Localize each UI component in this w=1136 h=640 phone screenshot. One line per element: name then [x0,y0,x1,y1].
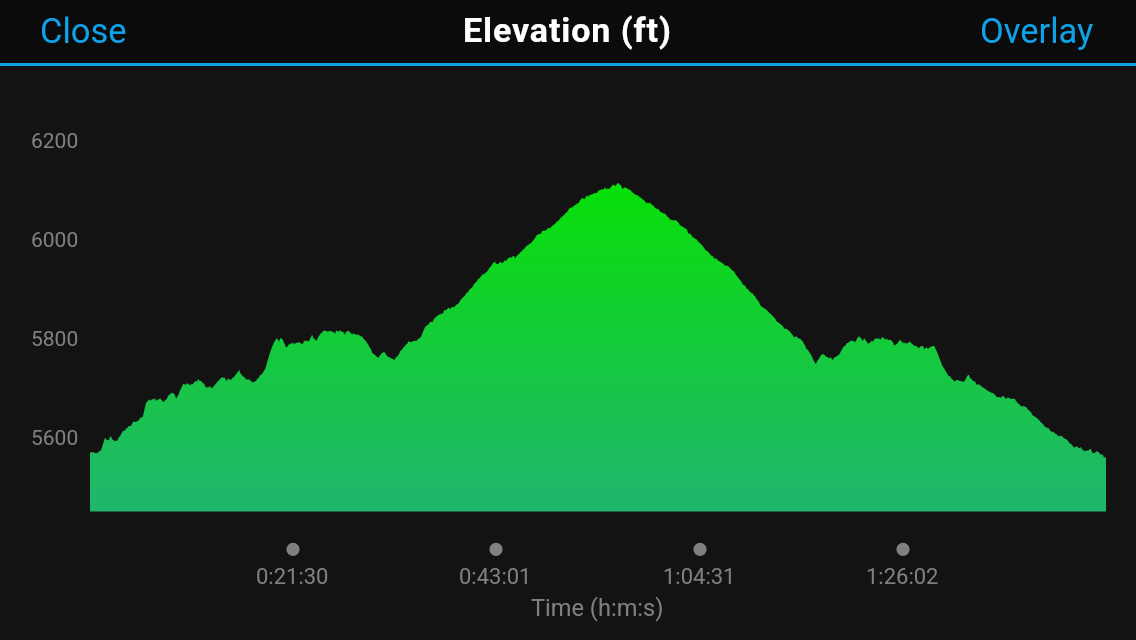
staticText: 1:26:02 [866,564,939,590]
staticText: 6000 [31,228,79,253]
staticText: 1:04:31 [663,564,736,590]
button[interactable]: Close [18,0,149,63]
staticText: 6200 [31,129,79,154]
staticText: 5600 [31,426,79,451]
staticText: 5800 [31,327,79,352]
staticText: 0:43:01 [459,564,532,590]
staticText: 0:21:30 [256,564,329,590]
staticText: Time (h:m:s) [531,594,664,622]
staticText: Close [40,11,127,51]
button[interactable]: Overlay [958,0,1116,63]
button[interactable]: Elevation graph [90,183,1106,511]
staticText: Overlay [980,11,1094,51]
staticText: Elevation (ft) [463,10,672,50]
